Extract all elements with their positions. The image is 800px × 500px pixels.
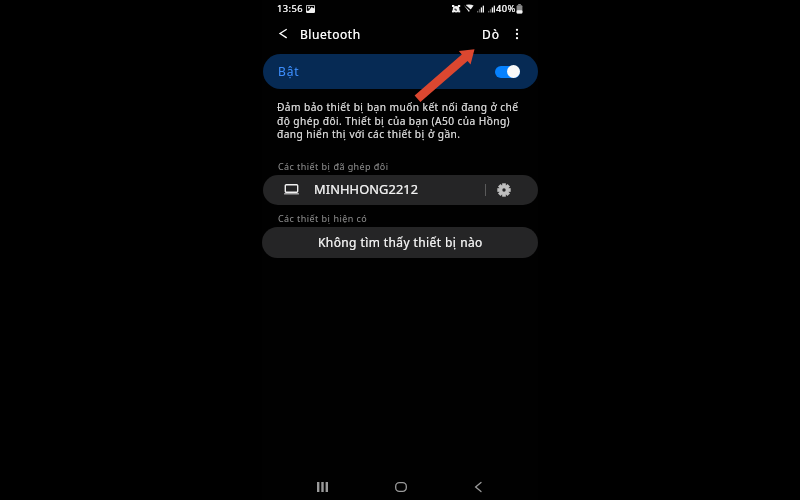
button[interactable]: Navigate up: [272, 22, 294, 44]
staticText: Không tìm thấy thiết bị nào: [318, 234, 483, 250]
button[interactable]: Back: [466, 475, 489, 498]
button[interactable]: Recent apps: [311, 475, 334, 498]
button[interactable]: More options: [507, 23, 527, 43]
staticText: Các thiết bị đã ghép đôi: [278, 160, 389, 172]
button[interactable]: Device settings: [496, 182, 512, 198]
staticText: Bluetooth: [300, 26, 361, 42]
staticText: 13:56: [277, 2, 304, 15]
staticText: Bật: [278, 63, 300, 79]
staticText: Đảm bảo thiết bị bạn muốn kết nối đang ở…: [277, 100, 519, 141]
button[interactable]: Dò: [477, 23, 505, 45]
staticText: 40%: [496, 2, 516, 15]
staticText: MINHHONG2212: [314, 180, 419, 197]
button[interactable]: Bật: [263, 54, 538, 89]
button[interactable]: Home: [389, 475, 412, 498]
staticText: Dò: [482, 26, 500, 42]
button[interactable]: Bluetooth on: [491, 61, 524, 82]
staticText: Các thiết bị hiện có: [278, 212, 368, 224]
button[interactable]: MINHHONG2212: [263, 175, 538, 205]
button[interactable]: Không tìm thấy thiết bị nào: [262, 227, 538, 258]
